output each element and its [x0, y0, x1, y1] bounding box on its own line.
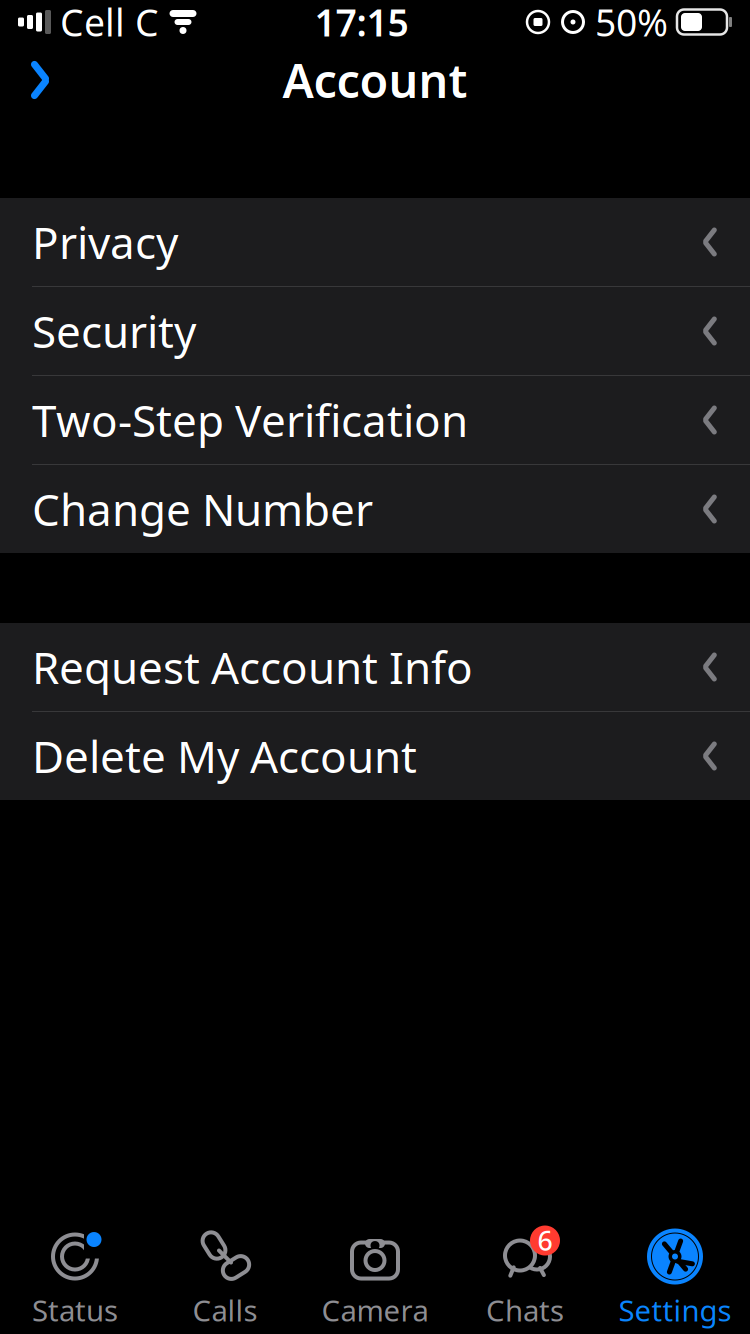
button[interactable]: Change Number [0, 465, 750, 553]
button[interactable]: Back [0, 44, 74, 116]
staticText: Camera [321, 1290, 428, 1329]
button[interactable]: Two-Step Verification [0, 376, 750, 464]
button[interactable]: Status [0, 1224, 150, 1334]
staticText: Two-Step Verification [32, 391, 468, 449]
staticText: Security [32, 302, 196, 360]
button[interactable]: Settings [600, 1224, 750, 1334]
staticText: Privacy [32, 213, 178, 271]
staticText: 6 [537, 1223, 552, 1258]
button[interactable]: Delete My Account [0, 712, 750, 800]
staticText: Settings [618, 1290, 731, 1329]
staticText: Account [282, 49, 467, 111]
button[interactable]: Privacy [0, 198, 750, 286]
staticText: Calls [192, 1290, 257, 1329]
button[interactable]: Request Account Info [0, 623, 750, 711]
staticText: Change Number [32, 480, 373, 538]
staticText: Status [32, 1290, 118, 1329]
staticText: Request Account Info [32, 638, 473, 696]
button[interactable]: Calls [150, 1224, 300, 1334]
staticText: 17:15 [314, 0, 408, 47]
staticText: Chats [486, 1290, 564, 1329]
button[interactable]: Camera [300, 1224, 450, 1334]
staticText: 50% [595, 0, 668, 47]
button[interactable]: 6 [450, 1224, 600, 1334]
button[interactable]: Security [0, 287, 750, 375]
staticText: Cell C [60, 0, 159, 47]
staticText: Delete My Account [32, 727, 417, 785]
